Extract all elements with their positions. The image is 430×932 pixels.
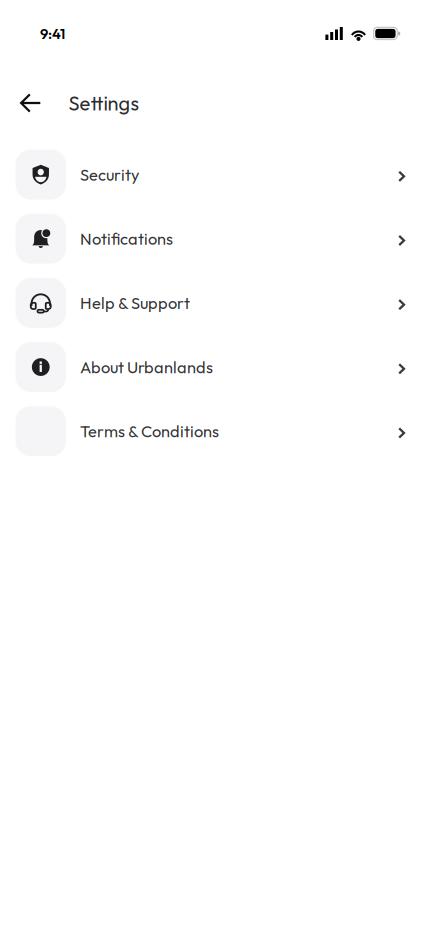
button[interactable]: Help & Support: [0, 271, 430, 335]
staticText: Notifications: [80, 228, 173, 249]
staticText: Terms & Conditions: [80, 421, 219, 442]
button[interactable]: Terms & Conditions: [0, 399, 430, 463]
staticText: Settings: [69, 90, 140, 116]
button[interactable]: Notifications: [0, 207, 430, 271]
button[interactable]: Back: [11, 82, 50, 124]
staticText: About Urbanlands: [80, 357, 213, 377]
staticText: Help & Support: [80, 293, 190, 313]
staticText: 9:41: [40, 24, 65, 43]
button[interactable]: Security: [0, 142, 430, 207]
button[interactable]: About Urbanlands: [0, 335, 430, 399]
staticText: Security: [80, 164, 139, 185]
